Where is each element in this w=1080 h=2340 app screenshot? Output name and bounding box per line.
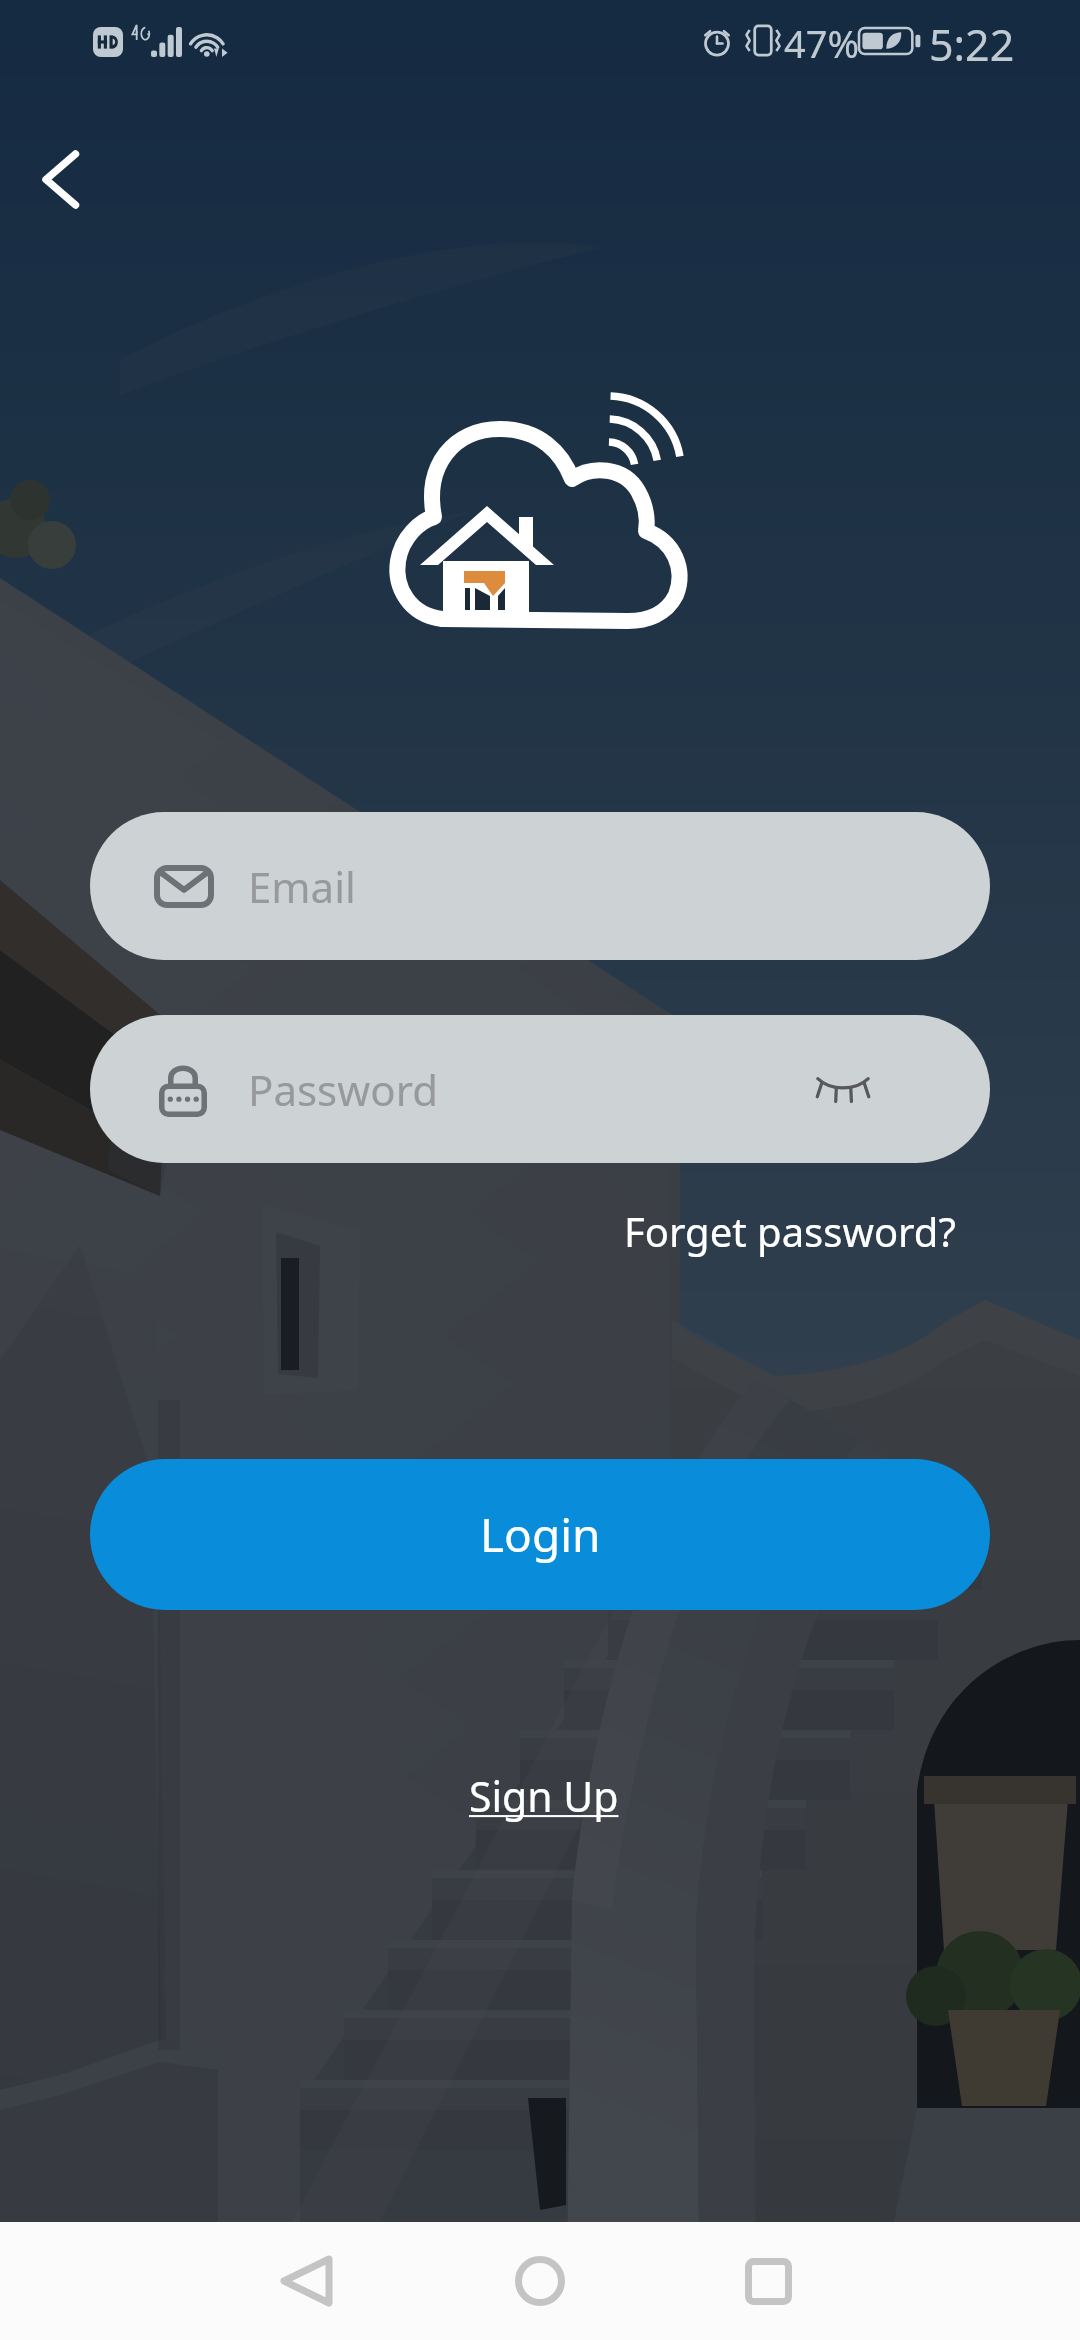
button[interactable]: Email [90, 812, 990, 960]
button[interactable]: Password [90, 1015, 990, 1163]
button[interactable]: Back [10, 128, 110, 230]
button[interactable]: Home [468, 2222, 612, 2340]
button[interactable]: Show password [789, 1035, 897, 1143]
button[interactable]: Back [234, 2222, 378, 2340]
button[interactable]: Login [90, 1459, 990, 1610]
staticText: 5:22 [929, 15, 1015, 74]
staticText: Email [248, 858, 356, 915]
staticText: Password [248, 1061, 438, 1118]
button[interactable]: Forget password? [624, 1204, 956, 1258]
staticText: Sign Up [469, 1768, 619, 1824]
staticText: Forget password? [624, 1204, 956, 1258]
button[interactable]: Recent apps [696, 2222, 840, 2340]
button[interactable]: Sign Up [469, 1768, 619, 1824]
staticText: Login [480, 1503, 601, 1566]
staticText: 47% [784, 17, 860, 69]
